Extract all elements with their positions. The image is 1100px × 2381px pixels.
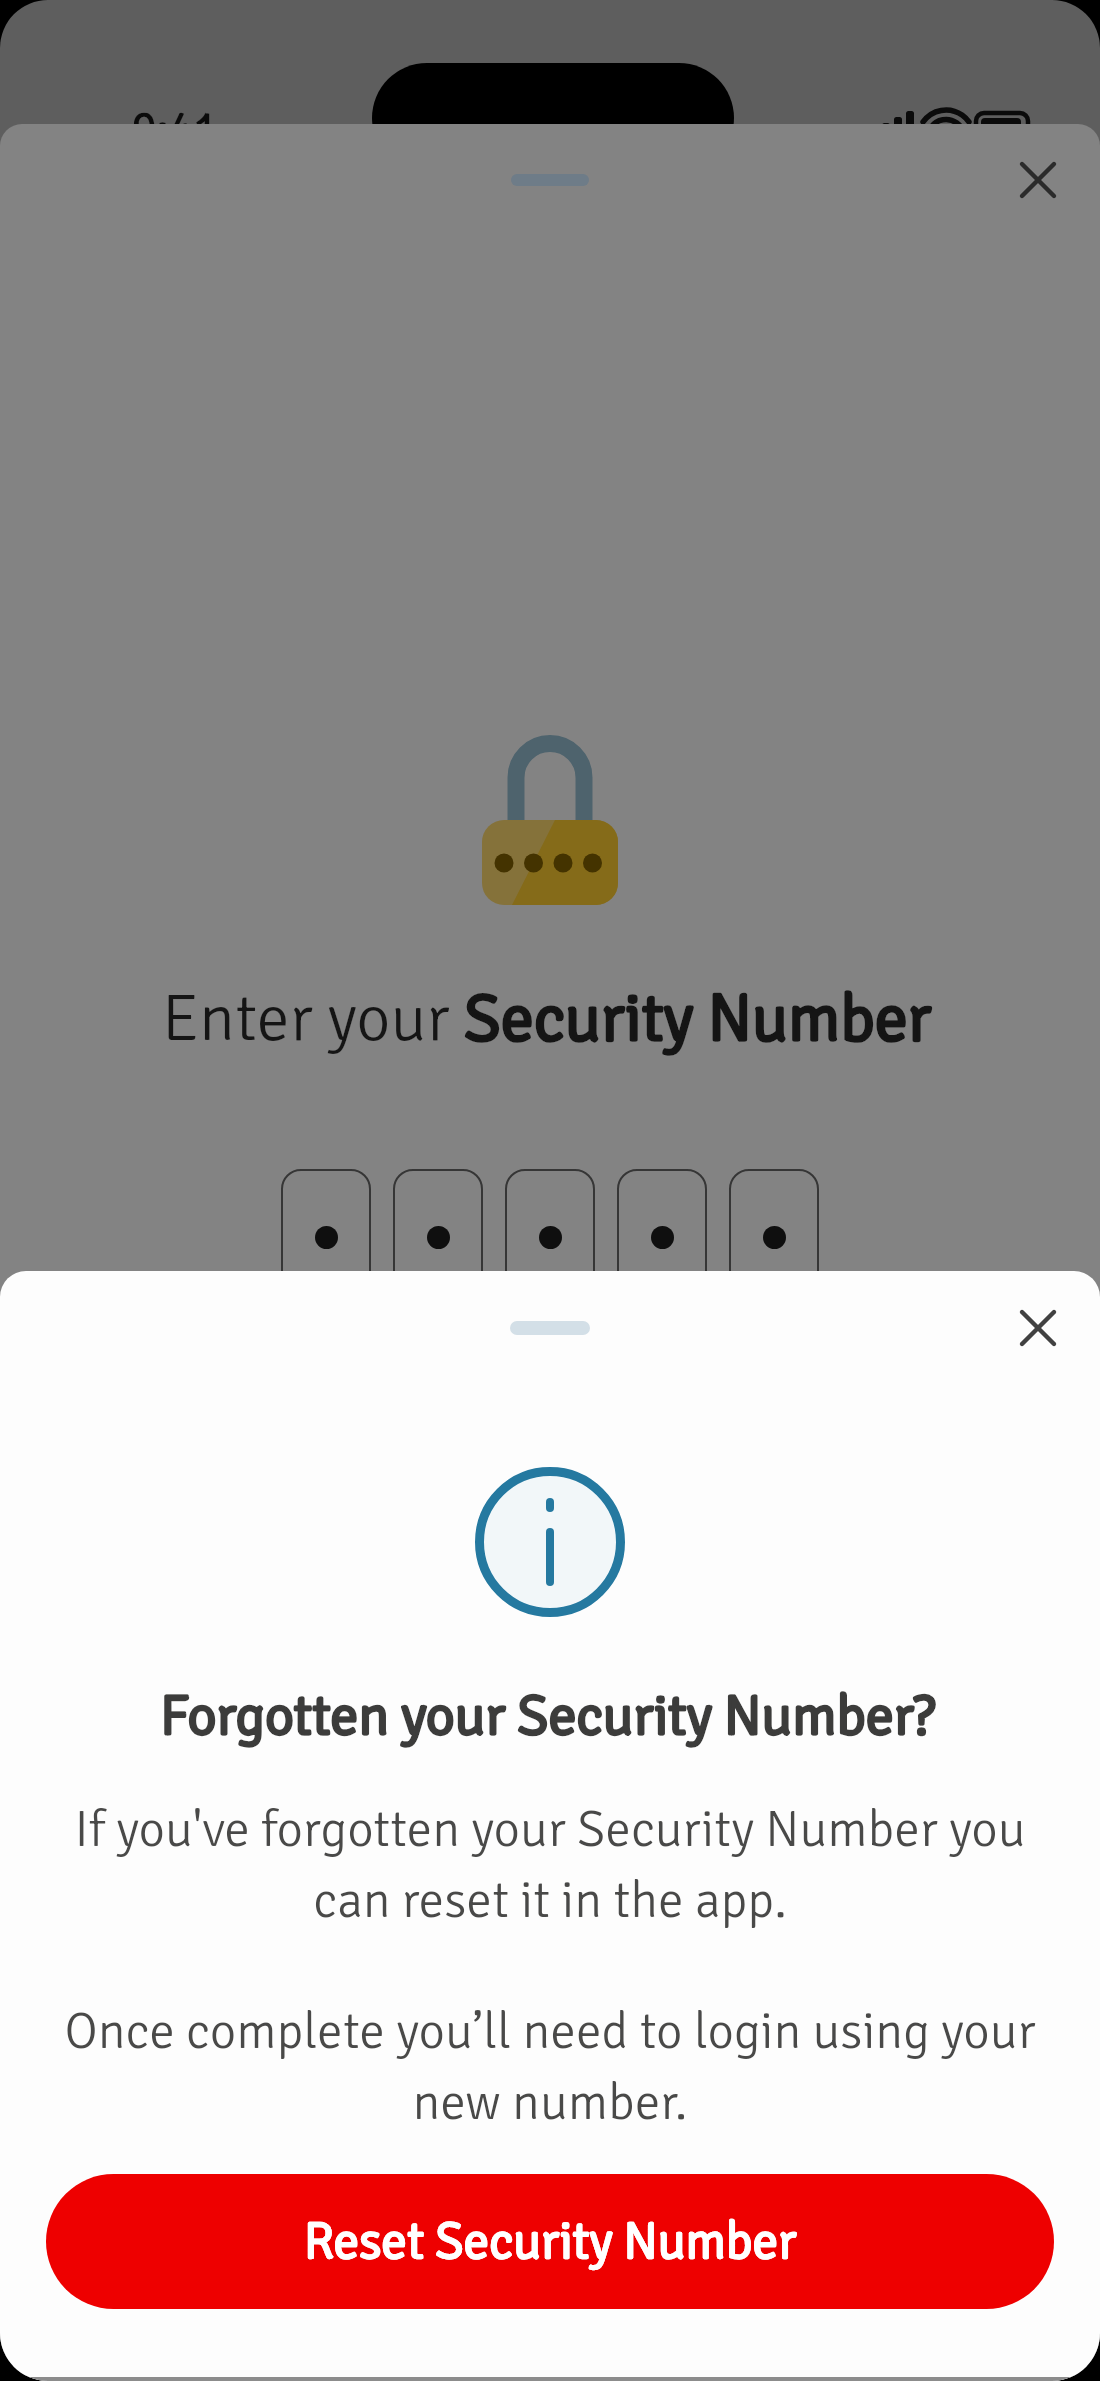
button[interactable]: Close	[1002, 1292, 1074, 1364]
staticText: If you've forgotten your Security Number…	[40, 1798, 1060, 1932]
staticText: Reset Security Number	[304, 2210, 797, 2273]
button[interactable]: Close	[1002, 144, 1074, 216]
staticText: Enter your Security Number	[162, 978, 931, 1059]
staticText: Enter your Security Number	[162, 978, 931, 1059]
staticText: Forgotten your Security Number?	[160, 1681, 935, 1750]
staticText: Forgotten your Security Number?	[160, 1681, 935, 1750]
button[interactable]: Security number digit	[281, 1169, 371, 1293]
staticText: 9:41	[132, 100, 219, 157]
button[interactable]: Reset Security Number	[46, 2174, 1054, 2309]
button[interactable]: Security number digit	[729, 1169, 819, 1293]
button[interactable]: Security number digit	[617, 1169, 707, 1293]
button[interactable]: Security number digit	[505, 1169, 595, 1293]
staticText: Once complete you’ll need to login using…	[28, 2000, 1072, 2134]
button[interactable]: Security number digit	[393, 1169, 483, 1293]
staticText: Reset Security Number	[304, 2210, 797, 2273]
